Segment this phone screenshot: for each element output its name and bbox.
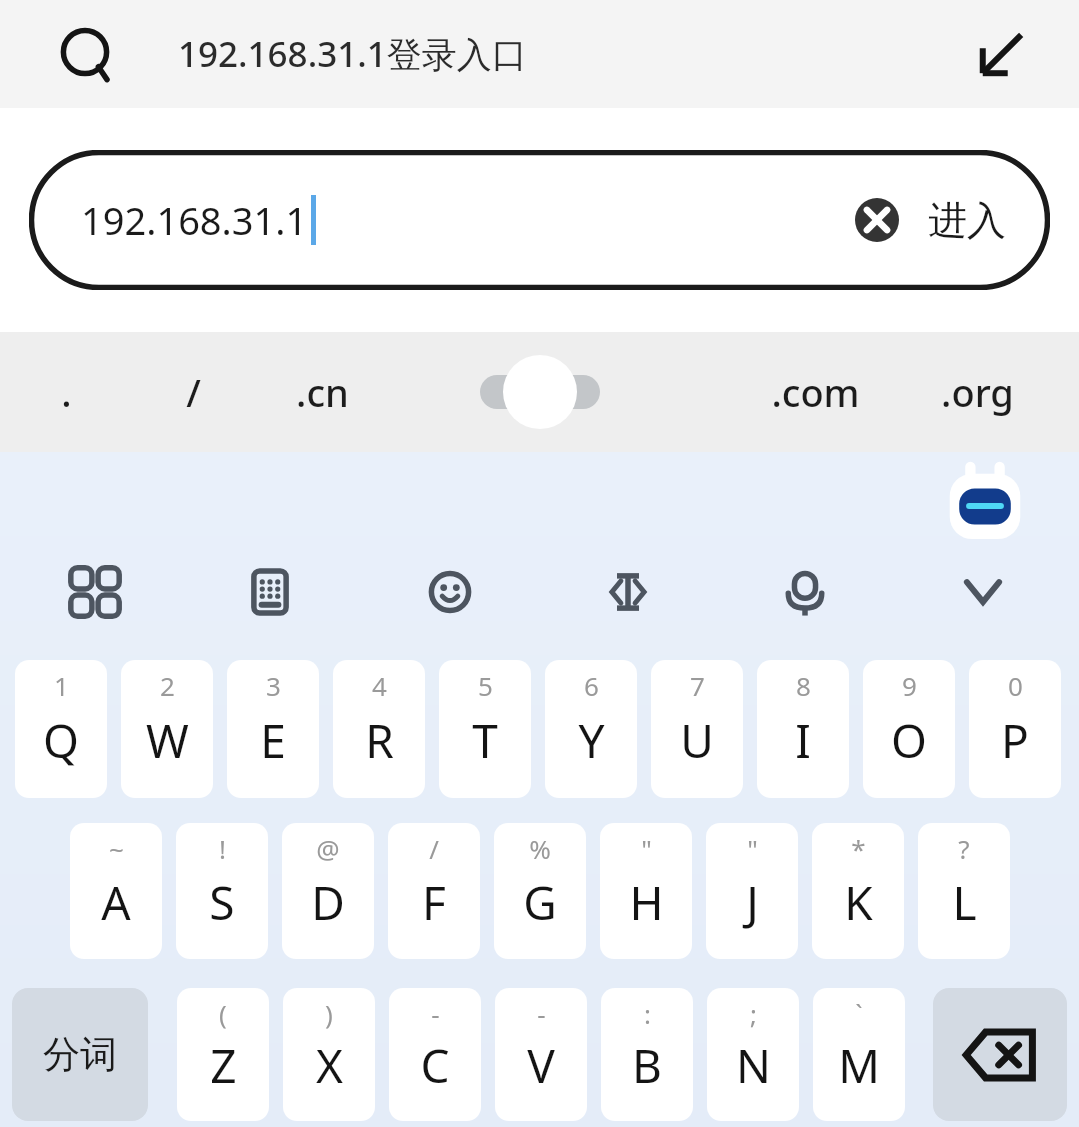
button[interactable]: / (133, 332, 253, 452)
staticText: 0 (1008, 668, 1023, 703)
staticText: 4 (372, 668, 387, 703)
staticText: 分词 (43, 1031, 117, 1078)
button[interactable]: 0 (969, 660, 1061, 798)
staticText: H (629, 871, 664, 934)
staticText: V (527, 1034, 555, 1097)
button[interactable]: Backspace (933, 988, 1067, 1121)
staticText: I (795, 709, 811, 772)
button[interactable]: ? (918, 823, 1010, 959)
button[interactable]: .com (755, 332, 875, 452)
staticText: .org (941, 366, 1014, 418)
staticText: " (747, 831, 758, 866)
staticText: O (891, 709, 927, 772)
staticText: 8 (796, 668, 811, 703)
button[interactable]: 分词 (12, 988, 148, 1121)
button[interactable]: - (495, 988, 587, 1121)
staticText: U (680, 709, 714, 772)
button[interactable]: ; (707, 988, 799, 1121)
button[interactable]: . (6, 332, 126, 452)
button[interactable]: 进入 (928, 196, 1006, 245)
button[interactable]: Assistant (942, 460, 1028, 546)
staticText: ` (855, 996, 863, 1031)
staticText: ! (219, 831, 226, 866)
staticText: Y (578, 709, 605, 772)
button[interactable]: 2 (121, 660, 213, 798)
staticText: : (644, 996, 651, 1031)
staticText: P (1001, 709, 1029, 772)
staticText: X (316, 1034, 343, 1097)
staticText: A (101, 871, 131, 934)
button[interactable]: Emoji (406, 548, 494, 636)
button[interactable]: Search (48, 17, 122, 91)
button[interactable]: Keyboard (226, 548, 314, 636)
staticText: 192.168.31.1 (81, 194, 308, 246)
staticText: * (851, 831, 866, 866)
staticText: B (632, 1034, 662, 1097)
staticText: - (537, 996, 546, 1031)
button[interactable]: 192.168.31.1 (29, 150, 1050, 290)
staticText: @ (316, 831, 340, 866)
button[interactable]: : (601, 988, 693, 1121)
staticText: 6 (584, 668, 599, 703)
button[interactable]: 7 (651, 660, 743, 798)
button[interactable]: 1 (15, 660, 107, 798)
button[interactable]: ( (177, 988, 269, 1121)
button[interactable]: ! (176, 823, 268, 959)
staticText: ) (325, 996, 333, 1031)
staticText: " (641, 831, 652, 866)
staticText: ; (750, 996, 757, 1031)
staticText: ~ (109, 831, 124, 866)
staticText: .cn (296, 366, 349, 418)
button[interactable]: .org (917, 332, 1037, 452)
button[interactable]: * (812, 823, 904, 959)
staticText: J (746, 871, 759, 934)
staticText: W (146, 709, 189, 772)
staticText: / (186, 366, 201, 418)
staticText: L (952, 871, 977, 934)
staticText: 进入 (928, 196, 1006, 245)
button[interactable]: Move cursor (584, 548, 672, 636)
button[interactable]: 3 (227, 660, 319, 798)
button[interactable]: 4 (333, 660, 425, 798)
staticText: / (429, 831, 439, 866)
button[interactable]: Keyboard layouts (51, 548, 139, 636)
staticText: . (61, 366, 72, 418)
staticText: F (422, 871, 446, 934)
button[interactable]: ` (813, 988, 905, 1121)
staticText: 2 (160, 668, 175, 703)
staticText: 1 (54, 668, 69, 703)
button[interactable]: 8 (757, 660, 849, 798)
staticText: D (311, 871, 345, 934)
staticText: Z (210, 1034, 237, 1097)
staticText: 3 (266, 668, 281, 703)
button[interactable]: @ (282, 823, 374, 959)
button[interactable]: - (389, 988, 481, 1121)
button[interactable]: .cn (262, 332, 382, 452)
button[interactable]: 5 (439, 660, 531, 798)
button[interactable]: % (494, 823, 586, 959)
staticText: ( (219, 996, 227, 1031)
staticText: M (838, 1034, 880, 1097)
button[interactable]: Hide keyboard (939, 548, 1027, 636)
staticText: % (529, 831, 551, 866)
button[interactable]: ) (283, 988, 375, 1121)
staticText: - (431, 996, 440, 1031)
button[interactable]: Collapse (965, 18, 1037, 90)
button[interactable]: ~ (70, 823, 162, 959)
staticText: N (736, 1034, 771, 1097)
button[interactable]: 9 (863, 660, 955, 798)
button[interactable]: Voice input (761, 548, 849, 636)
staticText: R (365, 709, 394, 772)
staticText: T (472, 709, 498, 772)
staticText: S (209, 871, 235, 934)
staticText: G (523, 871, 557, 934)
button[interactable]: Drag handle (465, 347, 615, 437)
button[interactable]: / (388, 823, 480, 959)
button[interactable]: Clear text (840, 183, 914, 257)
button[interactable]: 6 (545, 660, 637, 798)
staticText: C (420, 1034, 450, 1097)
button[interactable]: " (600, 823, 692, 959)
staticText: K (844, 871, 873, 934)
staticText: 7 (690, 668, 705, 703)
button[interactable]: " (706, 823, 798, 959)
